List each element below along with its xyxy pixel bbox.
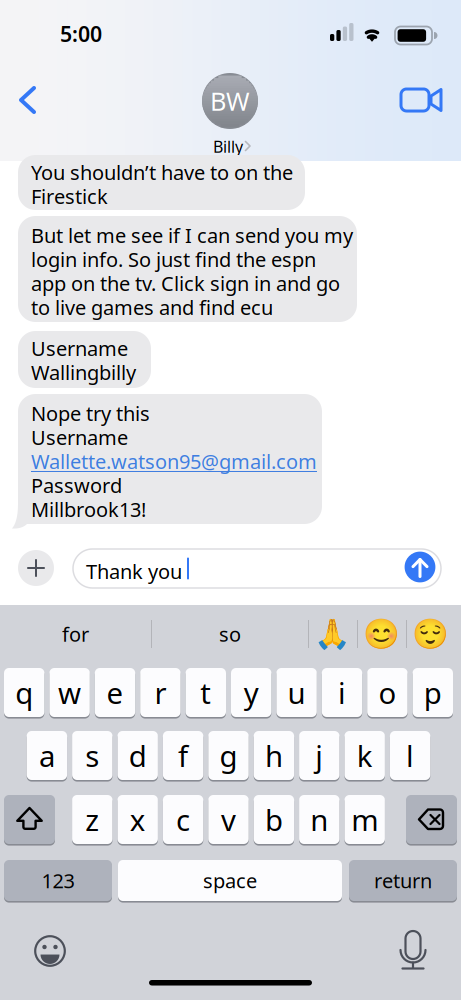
staticText: i (338, 673, 346, 712)
staticText: e (106, 673, 123, 712)
staticText: return (374, 867, 432, 894)
button[interactable]: k (344, 731, 385, 782)
button[interactable]: b (254, 795, 294, 846)
staticText: Firestick (31, 183, 108, 209)
button[interactable]: j (299, 731, 339, 782)
staticText: l (406, 736, 414, 775)
button[interactable]: n (299, 795, 339, 846)
staticText: p (424, 673, 442, 712)
staticText: m (351, 800, 378, 839)
button[interactable]: y (231, 668, 271, 719)
staticText: for (62, 621, 89, 647)
button[interactable]: m (344, 795, 385, 846)
button[interactable]: c (163, 795, 203, 846)
staticText: j (315, 736, 323, 775)
staticText: o (378, 673, 396, 712)
staticText: Username (31, 335, 128, 361)
staticText: y (244, 673, 259, 712)
button[interactable]: p (413, 668, 453, 719)
staticText: u (288, 673, 306, 712)
button[interactable]: Back (6, 78, 50, 122)
button[interactable]: Dictation (391, 927, 435, 975)
staticText: v (221, 800, 236, 839)
staticText: a (39, 736, 55, 775)
staticText: c (176, 800, 190, 839)
button[interactable]: l (390, 731, 430, 782)
button[interactable]: Shift (4, 795, 55, 846)
button[interactable]: x (117, 795, 158, 846)
button[interactable]: return (349, 860, 457, 903)
button[interactable]: FaceTime video call (396, 78, 448, 122)
staticText: Billy (213, 136, 243, 157)
staticText: so (219, 621, 241, 647)
staticText: 😊 (363, 617, 400, 651)
staticText: b (265, 800, 283, 839)
staticText: app on the tv. Click sign in and go (31, 270, 340, 296)
staticText: Password (31, 472, 122, 498)
staticText: Wallette.watson95@gmail.com (31, 448, 317, 474)
staticText: k (357, 736, 373, 775)
button[interactable]: Add attachment (16, 548, 56, 588)
staticText: h (265, 736, 283, 775)
staticText: Nope try this (31, 400, 150, 426)
staticText: 5:00 (60, 19, 102, 48)
staticText: 😌 (412, 617, 449, 651)
button[interactable]: u (276, 668, 317, 719)
staticText: 123 (41, 867, 74, 894)
button[interactable]: Wallette.watson95@gmail.com (31, 448, 317, 474)
staticText: t (200, 673, 211, 712)
staticText: g (219, 736, 237, 775)
button[interactable]: o (367, 668, 408, 719)
button[interactable]: r (140, 668, 181, 719)
staticText: space (203, 867, 257, 894)
staticText: r (154, 673, 166, 712)
staticText: Millbrook13! (31, 496, 146, 522)
staticText: But let me see if I can send you my (31, 222, 353, 248)
staticText: 🙏 (314, 617, 351, 651)
staticText: s (85, 736, 99, 775)
staticText: to live games and find ecu (31, 294, 273, 320)
button[interactable]: Folded hands emoji (308, 610, 357, 658)
button[interactable]: z (72, 795, 112, 846)
button[interactable]: v (208, 795, 249, 846)
button[interactable]: Relieved face emoji (406, 610, 455, 658)
button[interactable]: so (152, 610, 308, 658)
staticText: f (178, 736, 188, 775)
staticText: You shouldn’t have to on the (31, 159, 293, 185)
button[interactable]: Send (404, 551, 438, 585)
button[interactable]: 123 (4, 860, 112, 903)
staticText: Wallingbilly (31, 359, 136, 385)
staticText: n (310, 800, 328, 839)
button[interactable]: space (118, 860, 342, 903)
button[interactable]: t (186, 668, 226, 719)
button[interactable]: d (117, 731, 158, 782)
staticText: Thank you (86, 558, 182, 585)
button[interactable]: Delete (406, 795, 457, 846)
staticText: q (15, 673, 33, 712)
button[interactable]: Thank you (72, 548, 442, 589)
button[interactable]: i (322, 668, 362, 719)
staticText: BW (210, 84, 250, 118)
staticText: login info. So just find the espn (31, 246, 316, 272)
button[interactable]: q (4, 668, 44, 719)
staticText: w (58, 673, 81, 712)
staticText: Username (31, 424, 128, 450)
button[interactable]: h (254, 731, 294, 782)
button[interactable]: a (27, 731, 67, 782)
staticText: d (129, 736, 147, 775)
button[interactable]: g (208, 731, 249, 782)
button[interactable]: Smiling face emoji (357, 610, 406, 658)
staticText: z (85, 800, 99, 839)
button[interactable]: BW (175, 73, 285, 163)
button[interactable]: s (72, 731, 112, 782)
staticText: x (130, 800, 146, 839)
button[interactable]: Emoji keyboard (28, 929, 72, 973)
button[interactable]: e (95, 668, 135, 719)
button[interactable]: for (0, 610, 151, 658)
button[interactable]: f (163, 731, 203, 782)
button[interactable]: w (49, 668, 90, 719)
